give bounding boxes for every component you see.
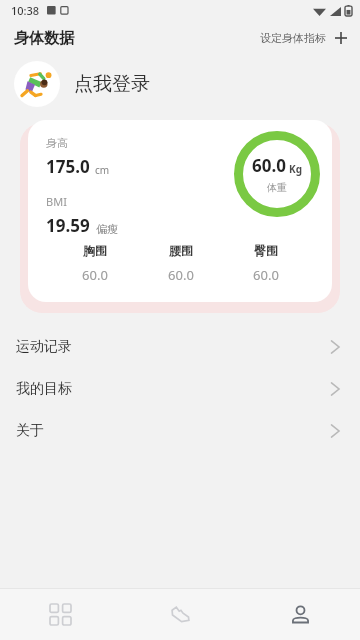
button[interactable]: Profile [240, 589, 360, 640]
staticText: 60.0 [253, 266, 279, 284]
staticText: 19.59 [46, 214, 90, 237]
staticText: 关于 [16, 422, 44, 440]
staticText: 10:38 [11, 3, 40, 18]
button[interactable]: 设定身体指标 [258, 27, 350, 49]
button[interactable]: 我的目标 [0, 368, 360, 410]
button[interactable]: Activity [120, 589, 240, 640]
staticText: Kg [289, 162, 302, 176]
staticText: 腰围 [169, 243, 193, 258]
staticText: 体重 [267, 181, 287, 194]
button[interactable]: 点我登录 [0, 56, 360, 112]
staticText: 臀围 [254, 243, 278, 258]
staticText: 胸围 [83, 243, 107, 258]
staticText: 身高 [46, 136, 68, 150]
staticText: cm [95, 163, 110, 177]
staticText: 我的目标 [16, 380, 72, 398]
staticText: 偏瘦 [96, 222, 118, 236]
staticText: 60.0 [252, 154, 286, 177]
button[interactable]: 运动记录 [0, 326, 360, 368]
button[interactable]: Dashboard [0, 589, 120, 640]
staticText: 60.0 [168, 266, 194, 284]
staticText: 点我登录 [74, 72, 150, 96]
other: Add [334, 31, 348, 45]
staticText: 175.0 [46, 155, 90, 178]
staticText: 运动记录 [16, 338, 72, 356]
button[interactable]: 关于 [0, 410, 360, 452]
staticText: 身体数据 [14, 29, 74, 48]
staticText: 60.0 [82, 266, 108, 284]
staticText: 设定身体指标 [260, 31, 326, 45]
button[interactable]: 身高 [28, 120, 332, 302]
staticText: BMI [46, 194, 67, 209]
